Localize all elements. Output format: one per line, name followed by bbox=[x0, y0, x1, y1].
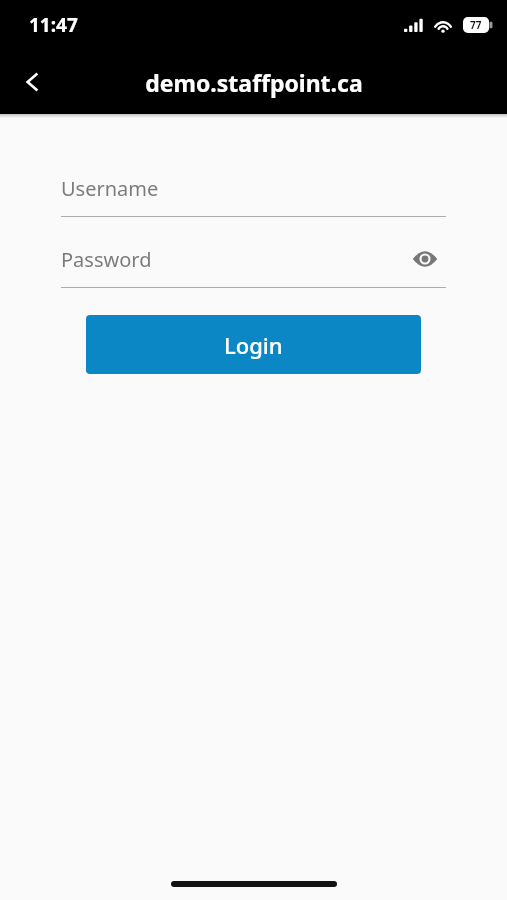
button[interactable]: Password bbox=[61, 231, 446, 287]
staticText: 11:47 bbox=[29, 12, 78, 38]
staticText: 77 bbox=[470, 18, 482, 32]
staticText: Password bbox=[61, 246, 152, 273]
staticText: Username bbox=[61, 175, 159, 202]
button[interactable]: Back bbox=[6, 56, 58, 108]
staticText: demo.staffpoint.ca bbox=[145, 67, 363, 98]
button[interactable]: Login bbox=[86, 315, 421, 374]
button[interactable]: Show password bbox=[404, 238, 446, 280]
button[interactable]: Username bbox=[61, 160, 446, 216]
staticText: Login bbox=[224, 330, 283, 360]
